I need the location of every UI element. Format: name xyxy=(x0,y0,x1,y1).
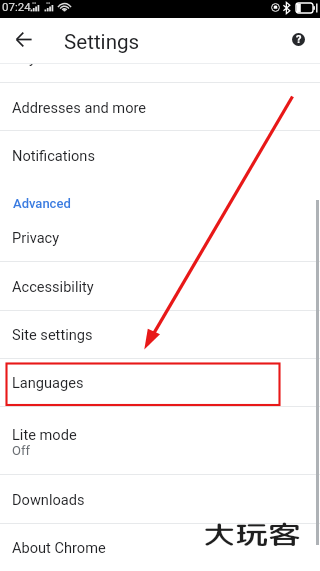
button[interactable]: About Chrome xyxy=(0,524,320,571)
button[interactable]: Downloads xyxy=(0,475,320,524)
staticText: Privacy xyxy=(12,229,60,246)
button[interactable]: Accessibility xyxy=(0,262,320,311)
staticText: ? xyxy=(296,33,302,46)
button[interactable]: Payment methods xyxy=(0,63,320,83)
staticText: 07:24 xyxy=(2,0,31,13)
staticText: Languages xyxy=(12,374,84,391)
button[interactable]: Lite mode xyxy=(0,407,320,475)
staticText: Lite mode xyxy=(12,426,77,443)
button[interactable]: Site settings xyxy=(0,311,320,359)
staticText: Notifications xyxy=(12,147,95,164)
button[interactable]: Languages xyxy=(0,359,320,407)
staticText: Payment methods xyxy=(12,63,131,66)
button[interactable]: Navigate up xyxy=(9,24,39,54)
button[interactable]: Privacy xyxy=(0,213,320,262)
staticText: Downloads xyxy=(12,491,85,508)
staticText: About Chrome xyxy=(12,539,106,556)
staticText: Accessibility xyxy=(12,278,94,295)
staticText: Settings xyxy=(64,30,140,54)
button[interactable]: Help and feedback xyxy=(283,24,314,55)
button[interactable]: Notifications xyxy=(0,131,320,179)
staticText: Off xyxy=(12,443,30,458)
staticText: Site settings xyxy=(12,326,93,343)
staticText: Addresses and more xyxy=(12,99,147,116)
staticText: Advanced xyxy=(13,196,71,211)
button[interactable]: Addresses and more xyxy=(0,83,320,131)
staticText: 大玩客 xyxy=(203,517,301,552)
